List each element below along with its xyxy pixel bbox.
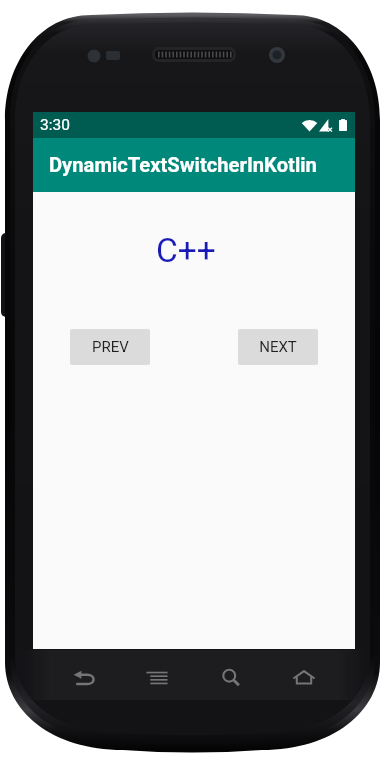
staticText: C++ [156,231,216,270]
button[interactable]: NEXT [238,329,318,365]
button[interactable]: Back [61,654,107,700]
button[interactable]: PREV [70,329,150,365]
button[interactable]: Home [281,654,327,700]
staticText: NEXT [259,338,297,356]
button[interactable]: Search [208,654,254,700]
staticText: DynamicTextSwitcherInKotlin [49,153,317,177]
staticText: PREV [92,338,129,356]
button[interactable]: Menu [134,654,180,700]
staticText: 3:30 [40,116,70,134]
